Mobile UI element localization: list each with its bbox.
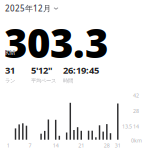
staticText: 28 xyxy=(133,107,139,115)
staticText: 21 xyxy=(78,142,84,149)
staticText: 13.5 xyxy=(122,123,132,130)
staticText: 平均ペース xyxy=(31,77,56,84)
staticText: 時間 xyxy=(63,77,73,84)
staticText: 0km xyxy=(131,137,142,144)
staticText: 7 xyxy=(29,142,32,149)
staticText: 31 xyxy=(115,142,121,149)
staticText: 14 xyxy=(133,123,139,130)
staticText: 26:19:45 xyxy=(63,64,99,76)
staticText: 1 xyxy=(7,142,10,149)
staticText: 14 xyxy=(53,142,59,149)
staticText: 2025年12月 xyxy=(5,3,51,14)
staticText: 42 xyxy=(133,92,139,99)
button[interactable]: 2025年12月 xyxy=(0,0,58,14)
staticText: 31 xyxy=(5,64,15,76)
staticText: ラン xyxy=(5,77,15,84)
staticText: 28 xyxy=(104,142,110,149)
staticText: KM xyxy=(5,48,15,57)
staticText: 303.3 xyxy=(4,16,108,69)
staticText: 5'12" xyxy=(31,64,52,76)
